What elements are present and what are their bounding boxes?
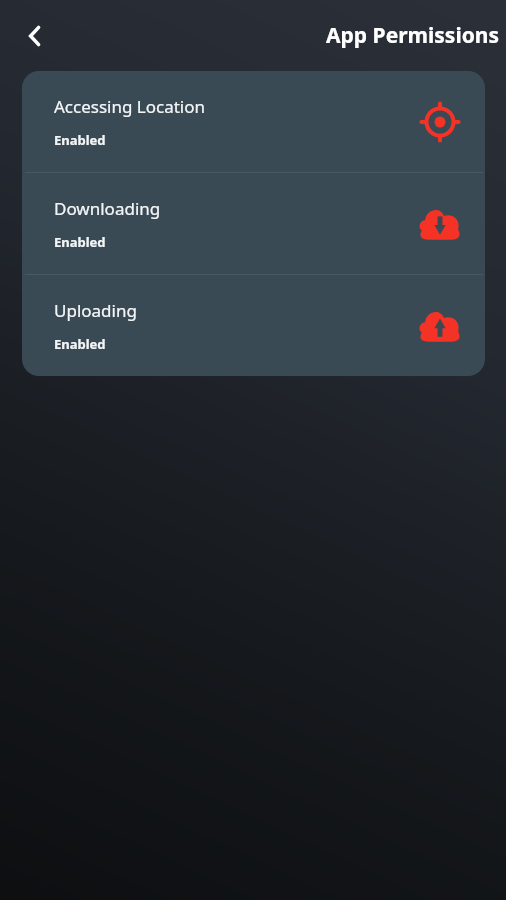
button[interactable]: Downloading bbox=[22, 173, 485, 274]
staticText: Accessing Location bbox=[54, 95, 206, 118]
button[interactable]: Back bbox=[14, 15, 56, 57]
staticText: Enabled bbox=[54, 335, 106, 353]
button[interactable]: Uploading bbox=[22, 275, 485, 376]
staticText: Downloading bbox=[54, 197, 161, 220]
staticText: App Permissions bbox=[326, 21, 499, 50]
button[interactable]: Accessing Location bbox=[22, 71, 485, 172]
staticText: Uploading bbox=[54, 299, 137, 322]
staticText: Enabled bbox=[54, 131, 106, 149]
staticText: Enabled bbox=[54, 233, 106, 251]
